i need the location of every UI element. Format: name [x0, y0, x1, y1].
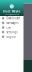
staticText: Messages [6, 21, 18, 25]
staticText: Bruce Wayne [3, 10, 21, 13]
staticText: Dashboard [6, 16, 20, 20]
button[interactable]: Cart [0, 25, 23, 30]
staticText: bruce@wayne.com [5, 14, 19, 15]
staticText: Settings [6, 30, 17, 34]
button[interactable]: Settings [0, 30, 23, 34]
button[interactable]: Dashboard [0, 16, 23, 21]
button[interactable]: Messages [0, 21, 23, 25]
button[interactable]: Logout [0, 34, 23, 39]
staticText: Cart [6, 26, 11, 29]
staticText: Logout [6, 35, 16, 38]
